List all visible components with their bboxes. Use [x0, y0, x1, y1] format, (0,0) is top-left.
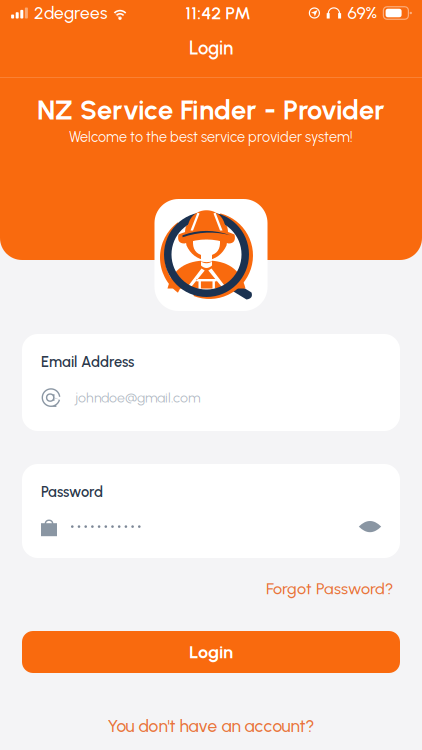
button[interactable]: Login — [22, 631, 400, 673]
button[interactable]: Login — [0, 37, 422, 59]
staticText: Login — [189, 641, 233, 663]
staticText: You don't have an account? — [107, 716, 314, 736]
staticText: johndoe@gmail.com — [75, 389, 201, 406]
staticText: NZ Service Finder - Provider — [37, 94, 385, 126]
button[interactable]: You don't have an account? — [22, 717, 400, 735]
button[interactable]: Forgot Password? — [266, 580, 393, 597]
staticText: Forgot Password? — [266, 579, 393, 598]
staticText: Login — [189, 37, 233, 59]
staticText: Welcome to the best service provider sys… — [69, 128, 353, 146]
button[interactable]: Show password — [358, 519, 382, 535]
staticText: 2degrees — [34, 3, 107, 23]
staticText: 69% — [347, 3, 377, 23]
staticText: Email Address — [41, 353, 134, 371]
staticText: Password — [41, 483, 103, 501]
staticText: 11:42 PM — [185, 2, 251, 24]
